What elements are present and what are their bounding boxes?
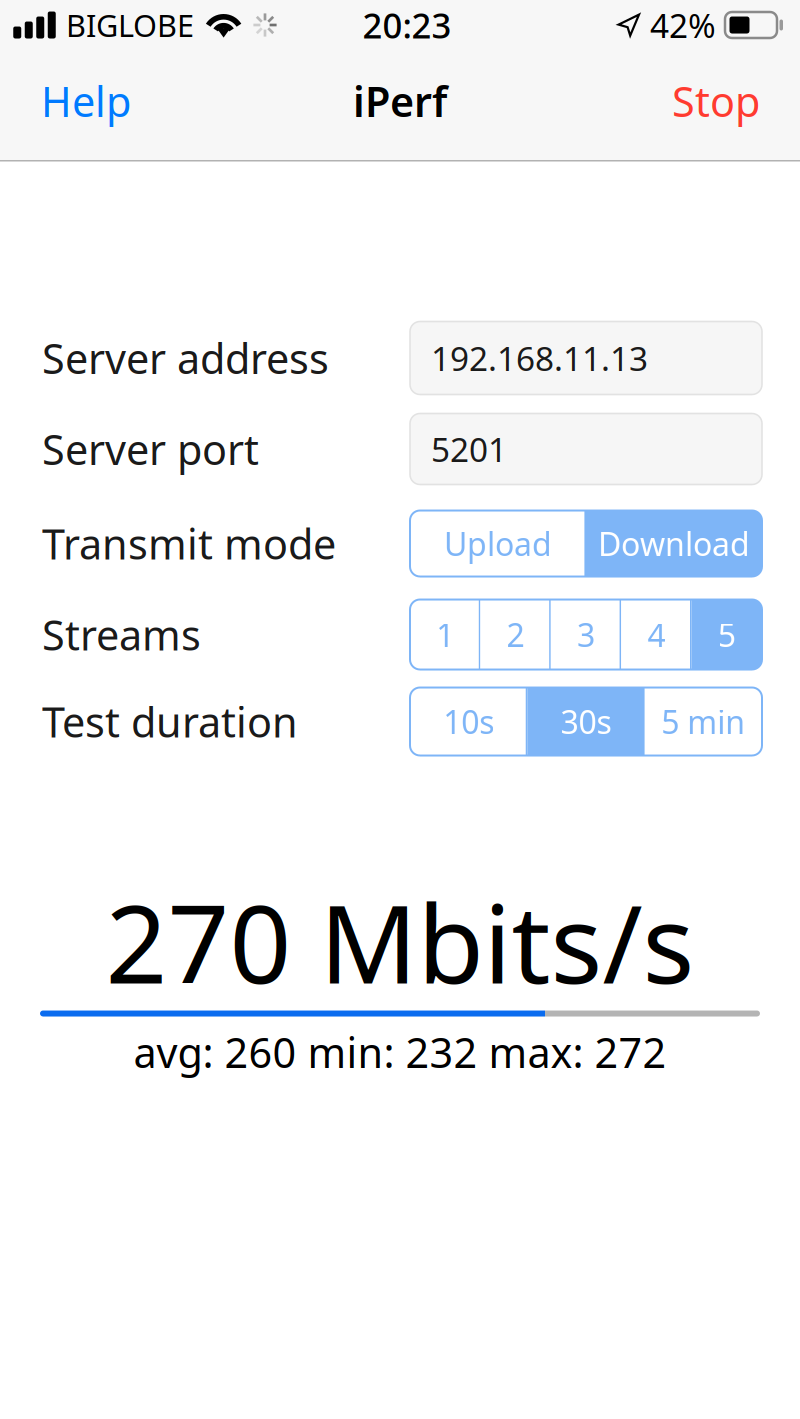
button[interactable]: Help	[0, 56, 153, 146]
staticText: Stop	[672, 74, 760, 128]
staticText: 1	[436, 613, 454, 656]
staticText: avg: 260 min: 232 max: 272	[133, 1024, 666, 1079]
staticText: Test duration	[42, 694, 298, 749]
button[interactable]: 5 min	[645, 687, 762, 755]
staticText: 10s	[443, 700, 494, 743]
staticText: 42%	[650, 3, 716, 47]
staticText: 5 min	[661, 700, 745, 743]
staticText: 3	[577, 613, 595, 656]
button[interactable]: 30s	[527, 687, 645, 755]
staticText: Upload	[444, 522, 552, 565]
staticText: BIGLOBE	[66, 5, 194, 45]
staticText: 5	[718, 613, 736, 656]
staticText: 270 Mbits/s	[105, 870, 694, 1013]
staticText: 192.168.11.13	[431, 336, 648, 380]
button[interactable]: 1	[410, 599, 480, 669]
staticText: Server address	[42, 331, 329, 385]
staticText: 4	[647, 613, 665, 656]
staticText: Download	[598, 522, 750, 565]
button[interactable]: Stop	[650, 56, 800, 146]
staticText: 5201	[431, 427, 507, 471]
button[interactable]: 192.168.11.13	[410, 321, 762, 394]
button[interactable]: Download	[586, 510, 762, 576]
staticText: iPerf	[353, 74, 447, 128]
button[interactable]: 10s	[410, 687, 527, 755]
button[interactable]: 3	[551, 599, 621, 669]
button[interactable]: Upload	[410, 510, 586, 576]
staticText: 2	[507, 613, 525, 656]
button[interactable]: 4	[621, 599, 692, 669]
button[interactable]: 5	[692, 599, 762, 669]
staticText: Streams	[42, 607, 201, 662]
staticText: 20:23	[362, 2, 451, 48]
staticText: Help	[41, 74, 131, 128]
staticText: Transmit mode	[42, 516, 336, 571]
staticText: 30s	[560, 700, 611, 743]
button[interactable]: 5201	[410, 413, 762, 484]
button[interactable]: 2	[480, 599, 551, 669]
staticText: Server port	[42, 422, 259, 476]
